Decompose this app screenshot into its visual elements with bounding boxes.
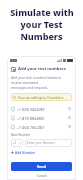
staticText: Numbers [20, 30, 63, 42]
staticText: Enter your Number [27, 141, 56, 145]
staticText: +1 (555) 340-6789 [17, 107, 45, 111]
staticText: Add your test numbers [18, 66, 66, 72]
staticText: New Number [11, 133, 31, 137]
button[interactable]: Enter your Number [25, 139, 72, 147]
staticText: +1 [13, 141, 17, 145]
button[interactable]: Delete number [67, 124, 72, 129]
button[interactable]: +1 (555) 340-6789 [11, 104, 72, 113]
button[interactable]: Cancel [37, 174, 47, 178]
staticText: your Test [20, 18, 63, 30]
staticText: Simulate with [10, 6, 74, 18]
button[interactable]: Send [11, 162, 72, 171]
button[interactable]: Add Number [11, 150, 36, 154]
staticText: Send [37, 164, 46, 169]
staticText: Add Number [15, 150, 36, 154]
button[interactable]: +1 [11, 139, 23, 147]
staticText: Add your test numbers below to receive s… [11, 75, 72, 90]
button[interactable]: Delete number [67, 115, 72, 120]
staticText: You can add up to 3 numbers [18, 95, 64, 99]
button[interactable]: Close [11, 67, 16, 72]
staticText: +1 (415) 884-8655 [17, 116, 45, 120]
button[interactable]: +1 (262) 765-2001 [11, 122, 72, 131]
staticText: +1 (262) 765-2001 [17, 125, 45, 129]
button[interactable]: Delete number [67, 106, 72, 111]
button[interactable]: +1 (415) 884-8655 [11, 113, 72, 122]
button[interactable]: Close [11, 66, 72, 72]
